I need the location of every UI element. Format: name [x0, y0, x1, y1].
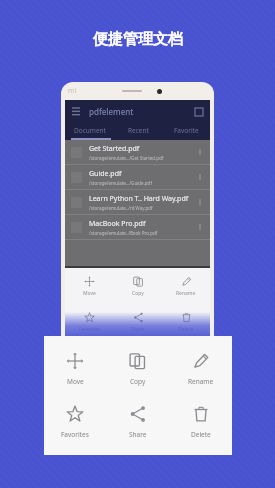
button[interactable]: MacBook Pro.pdf — [65, 215, 210, 239]
staticText: 便捷管理文档 — [93, 30, 183, 49]
staticText: Share — [131, 326, 145, 333]
staticText: Favorites — [79, 326, 101, 333]
button[interactable]: Favorites — [44, 395, 106, 449]
staticText: Copy — [132, 290, 144, 297]
button[interactable]: Copy — [114, 268, 162, 304]
staticText: Get Started.pdf — [89, 144, 140, 154]
staticText: Move — [83, 290, 96, 297]
staticText: pdfelement — [89, 106, 134, 117]
staticText: Rename — [176, 290, 196, 297]
button[interactable]: Edit — [193, 106, 204, 117]
button[interactable]: Share — [114, 304, 162, 340]
button[interactable]: Move — [65, 268, 114, 304]
staticText: Move — [67, 377, 84, 386]
button[interactable]: Delete — [162, 304, 210, 340]
button[interactable]: Get Started.pdf — [65, 140, 210, 164]
button[interactable]: Share — [106, 395, 169, 449]
staticText: Favorites — [61, 430, 89, 439]
button[interactable]: Copy — [106, 342, 169, 395]
staticText: /storage/emulate.../Get Started.pdf — [89, 155, 164, 161]
staticText: Learn Python T.. Hard Way.pdf — [89, 194, 189, 204]
staticText: Share — [129, 430, 147, 439]
staticText: Favorite — [174, 126, 199, 135]
staticText: mi — [68, 86, 77, 96]
staticText: Guide.pdf — [89, 169, 122, 179]
button[interactable]: Favorites — [65, 304, 114, 340]
button[interactable]: Rename — [169, 342, 232, 395]
button[interactable]: Recent — [114, 122, 162, 138]
staticText: /storage/emulate../rd Way.pdf — [89, 205, 153, 211]
staticText: /storage/emulate../Book Pro.pdf — [89, 230, 158, 236]
staticText: Document — [74, 126, 106, 135]
staticText: Delete — [191, 430, 211, 439]
staticText: /storage/emulate.../Guide.pdf — [89, 180, 152, 186]
staticText: Copy — [130, 377, 146, 386]
button[interactable]: Document — [65, 122, 114, 138]
staticText: Rename — [188, 377, 214, 386]
button[interactable]: Favorite — [162, 122, 210, 138]
button[interactable]: Menu — [71, 106, 81, 116]
staticText: Delete — [178, 326, 194, 333]
staticText: Recent — [128, 126, 149, 135]
button[interactable]: Guide.pdf — [65, 165, 210, 189]
button[interactable]: Rename — [162, 268, 210, 304]
staticText: MacBook Pro.pdf — [89, 219, 146, 229]
button[interactable]: Move — [44, 342, 106, 395]
button[interactable]: Learn Python T.. Hard Way.pdf — [65, 190, 210, 214]
button[interactable]: Delete — [169, 395, 232, 449]
